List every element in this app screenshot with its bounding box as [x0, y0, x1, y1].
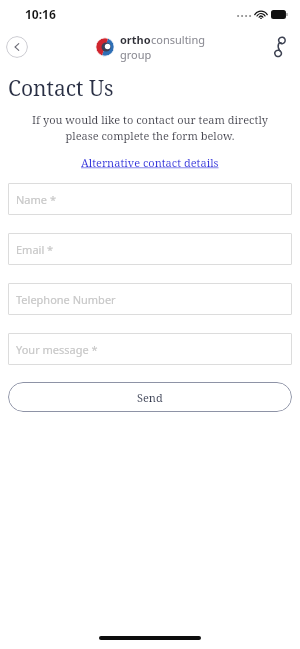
button[interactable]: Your message *	[8, 333, 292, 365]
staticText: Your message *	[16, 342, 98, 357]
staticText: Telephone Number	[16, 292, 116, 307]
staticText: Email *	[16, 242, 54, 257]
staticText: consulting	[151, 32, 206, 47]
button[interactable]: Name *	[8, 183, 292, 215]
button[interactable]: Send	[8, 382, 292, 412]
button[interactable]: Back	[6, 36, 28, 58]
button[interactable]: Telephone Number	[8, 283, 292, 315]
button[interactable]: Call	[268, 35, 292, 59]
staticText: group	[120, 47, 152, 62]
staticText: Contact Us	[8, 74, 114, 103]
button[interactable]: Email *	[8, 233, 292, 265]
staticText: Name *	[16, 192, 56, 207]
button[interactable]: Alternative contact details	[79, 153, 221, 172]
staticText: If you would like to contact our team di…	[20, 112, 280, 143]
staticText: Send	[137, 390, 163, 405]
staticText: ortho	[120, 32, 151, 47]
staticText: 10:16	[25, 6, 56, 22]
